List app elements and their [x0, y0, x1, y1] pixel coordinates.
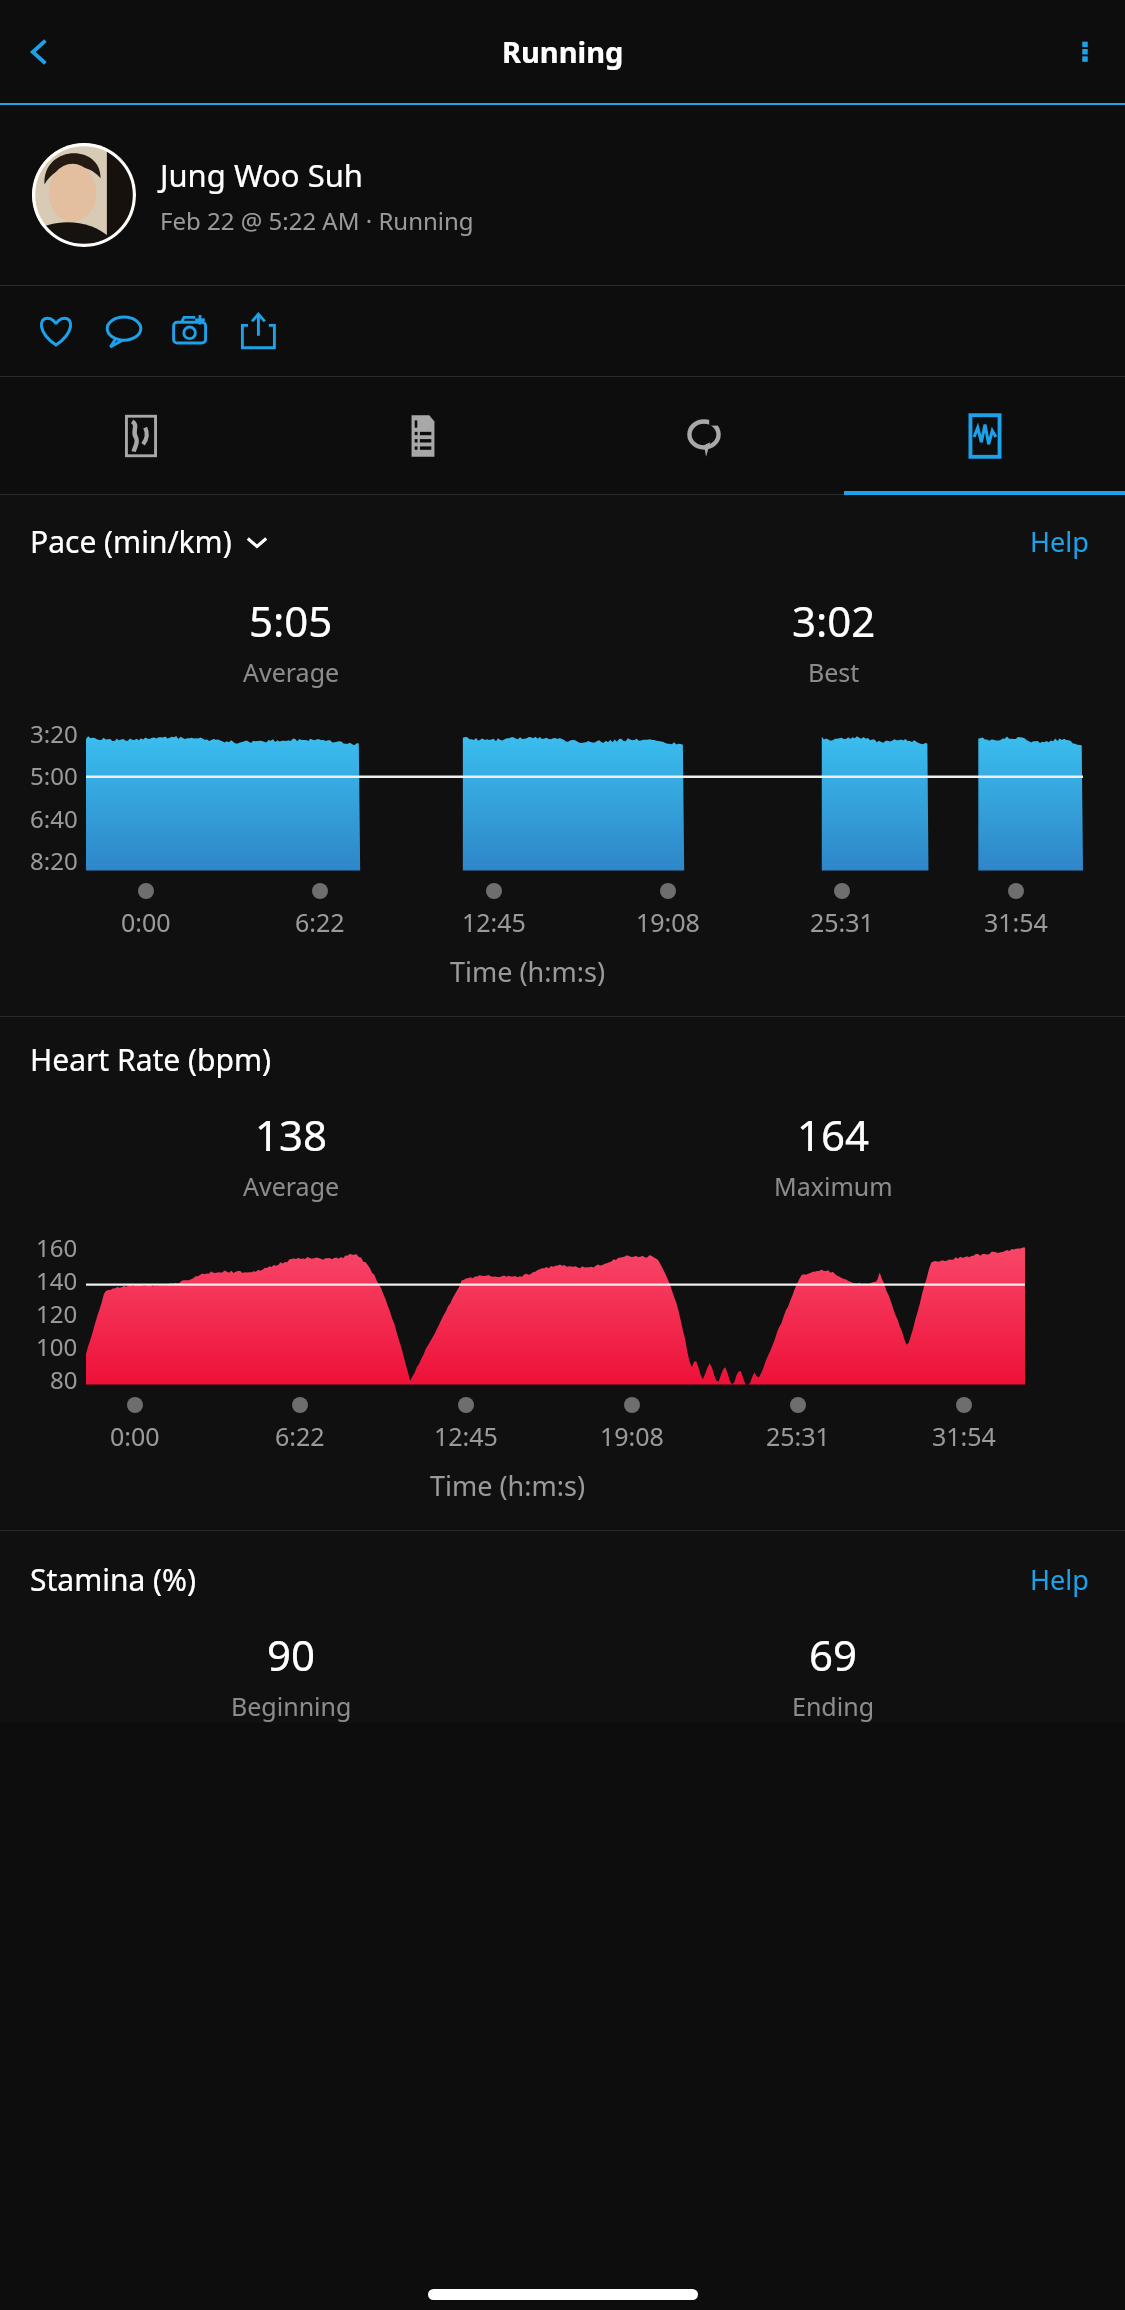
- button[interactable]: Comment: [90, 297, 158, 365]
- button[interactable]: Back: [12, 24, 68, 80]
- staticText: 3:02: [792, 592, 876, 649]
- staticText: 6:22: [295, 905, 345, 939]
- button[interactable]: Jung Woo Suh: [0, 105, 1125, 285]
- button[interactable]: Heart Rate (bpm): [30, 1039, 271, 1080]
- staticText: 25:31: [810, 905, 874, 939]
- staticText: 80: [50, 1363, 78, 1391]
- button[interactable]: Share: [226, 297, 294, 365]
- staticText: Ending: [792, 1689, 875, 1723]
- staticText: Help: [1030, 523, 1089, 560]
- button[interactable]: Like: [22, 297, 90, 365]
- staticText: Time (h:m:s): [0, 953, 1055, 990]
- button[interactable]: Map: [0, 377, 282, 495]
- staticText: 31:54: [984, 905, 1048, 939]
- staticText: Beginning: [231, 1689, 352, 1723]
- staticText: 0:00: [121, 905, 171, 939]
- staticText: 5:00: [30, 759, 78, 792]
- staticText: 0:00: [110, 1419, 160, 1453]
- staticText: Heart Rate (bpm): [30, 1039, 271, 1080]
- button[interactable]: Charts: [844, 377, 1125, 495]
- staticText: 160: [36, 1231, 78, 1264]
- button[interactable]: Details: [282, 377, 563, 495]
- staticText: 6:22: [275, 1419, 325, 1453]
- staticText: 12:45: [434, 1419, 498, 1453]
- staticText: 19:08: [636, 905, 700, 939]
- staticText: 100: [36, 1330, 78, 1363]
- staticText: 120: [36, 1297, 78, 1330]
- staticText: Jung Woo Suh: [160, 154, 364, 196]
- staticText: Feb 22 @ 5:22 AM · Running: [160, 204, 474, 237]
- staticText: Time (h:m:s): [0, 1467, 1015, 1504]
- button[interactable]: Help: [1024, 517, 1095, 566]
- staticText: 8:20: [30, 844, 78, 877]
- staticText: 5:05: [249, 592, 333, 649]
- staticText: 140: [36, 1264, 78, 1297]
- staticText: Best: [808, 655, 860, 689]
- button[interactable]: More options: [1059, 26, 1111, 78]
- staticText: Average: [243, 655, 340, 689]
- staticText: 164: [797, 1106, 870, 1163]
- staticText: 69: [809, 1626, 858, 1683]
- button[interactable]: Add photo: [158, 297, 226, 365]
- staticText: 138: [255, 1106, 328, 1163]
- staticText: 3:20: [30, 717, 78, 750]
- staticText: 25:31: [766, 1419, 830, 1453]
- staticText: Pace (min/km): [30, 521, 232, 562]
- staticText: Maximum: [774, 1169, 893, 1203]
- button[interactable]: Help: [1024, 1555, 1095, 1604]
- staticText: 12:45: [462, 905, 526, 939]
- staticText: 6:40: [30, 802, 78, 835]
- staticText: Average: [243, 1169, 340, 1203]
- staticText: Help: [1030, 1561, 1089, 1598]
- button[interactable]: Pace (min/km): [30, 521, 268, 562]
- staticText: Running: [502, 32, 624, 71]
- staticText: Stamina (%): [30, 1559, 197, 1600]
- staticText: 90: [267, 1626, 316, 1683]
- staticText: 19:08: [600, 1419, 664, 1453]
- button[interactable]: Laps: [563, 377, 844, 495]
- staticText: 31:54: [932, 1419, 996, 1453]
